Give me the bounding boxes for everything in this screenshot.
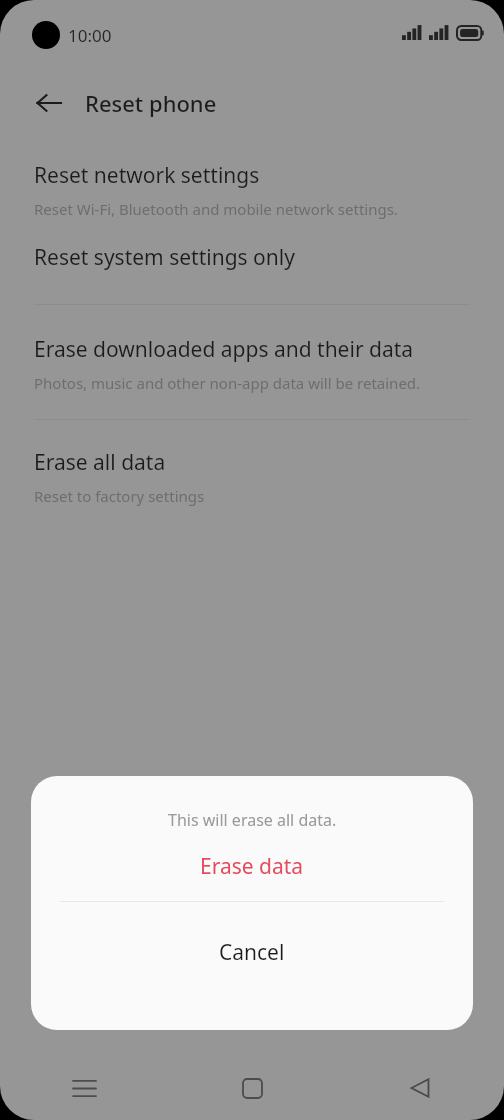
button[interactable]: Erase all data: [0, 448, 504, 506]
staticText: Erase downloaded apps and their data: [34, 335, 414, 364]
button[interactable]: Erase downloaded apps and their data: [0, 335, 504, 393]
button[interactable]: Cancel: [31, 902, 473, 1002]
button[interactable]: Erase data: [31, 831, 473, 901]
staticText: Reset system settings only: [34, 243, 295, 272]
staticText: Reset to factory settings: [34, 486, 205, 506]
button[interactable]: Recent apps: [0, 1056, 168, 1120]
button[interactable]: Back: [336, 1056, 504, 1120]
button[interactable]: Home: [168, 1056, 336, 1120]
staticText: 10:00: [68, 24, 112, 47]
button[interactable]: Reset system settings only: [0, 243, 504, 272]
staticText: Photos, music and other non-app data wil…: [34, 373, 421, 393]
staticText: Reset phone: [85, 88, 217, 118]
staticText: Erase data: [200, 852, 304, 881]
staticText: Cancel: [219, 938, 285, 967]
staticText: This will erase all data.: [168, 809, 337, 831]
button[interactable]: Back: [22, 76, 76, 130]
button[interactable]: Reset network settings: [0, 161, 504, 219]
staticText: Erase all data: [34, 448, 166, 477]
staticText: Reset Wi-Fi, Bluetooth and mobile networ…: [34, 199, 398, 219]
staticText: Reset network settings: [34, 161, 260, 190]
